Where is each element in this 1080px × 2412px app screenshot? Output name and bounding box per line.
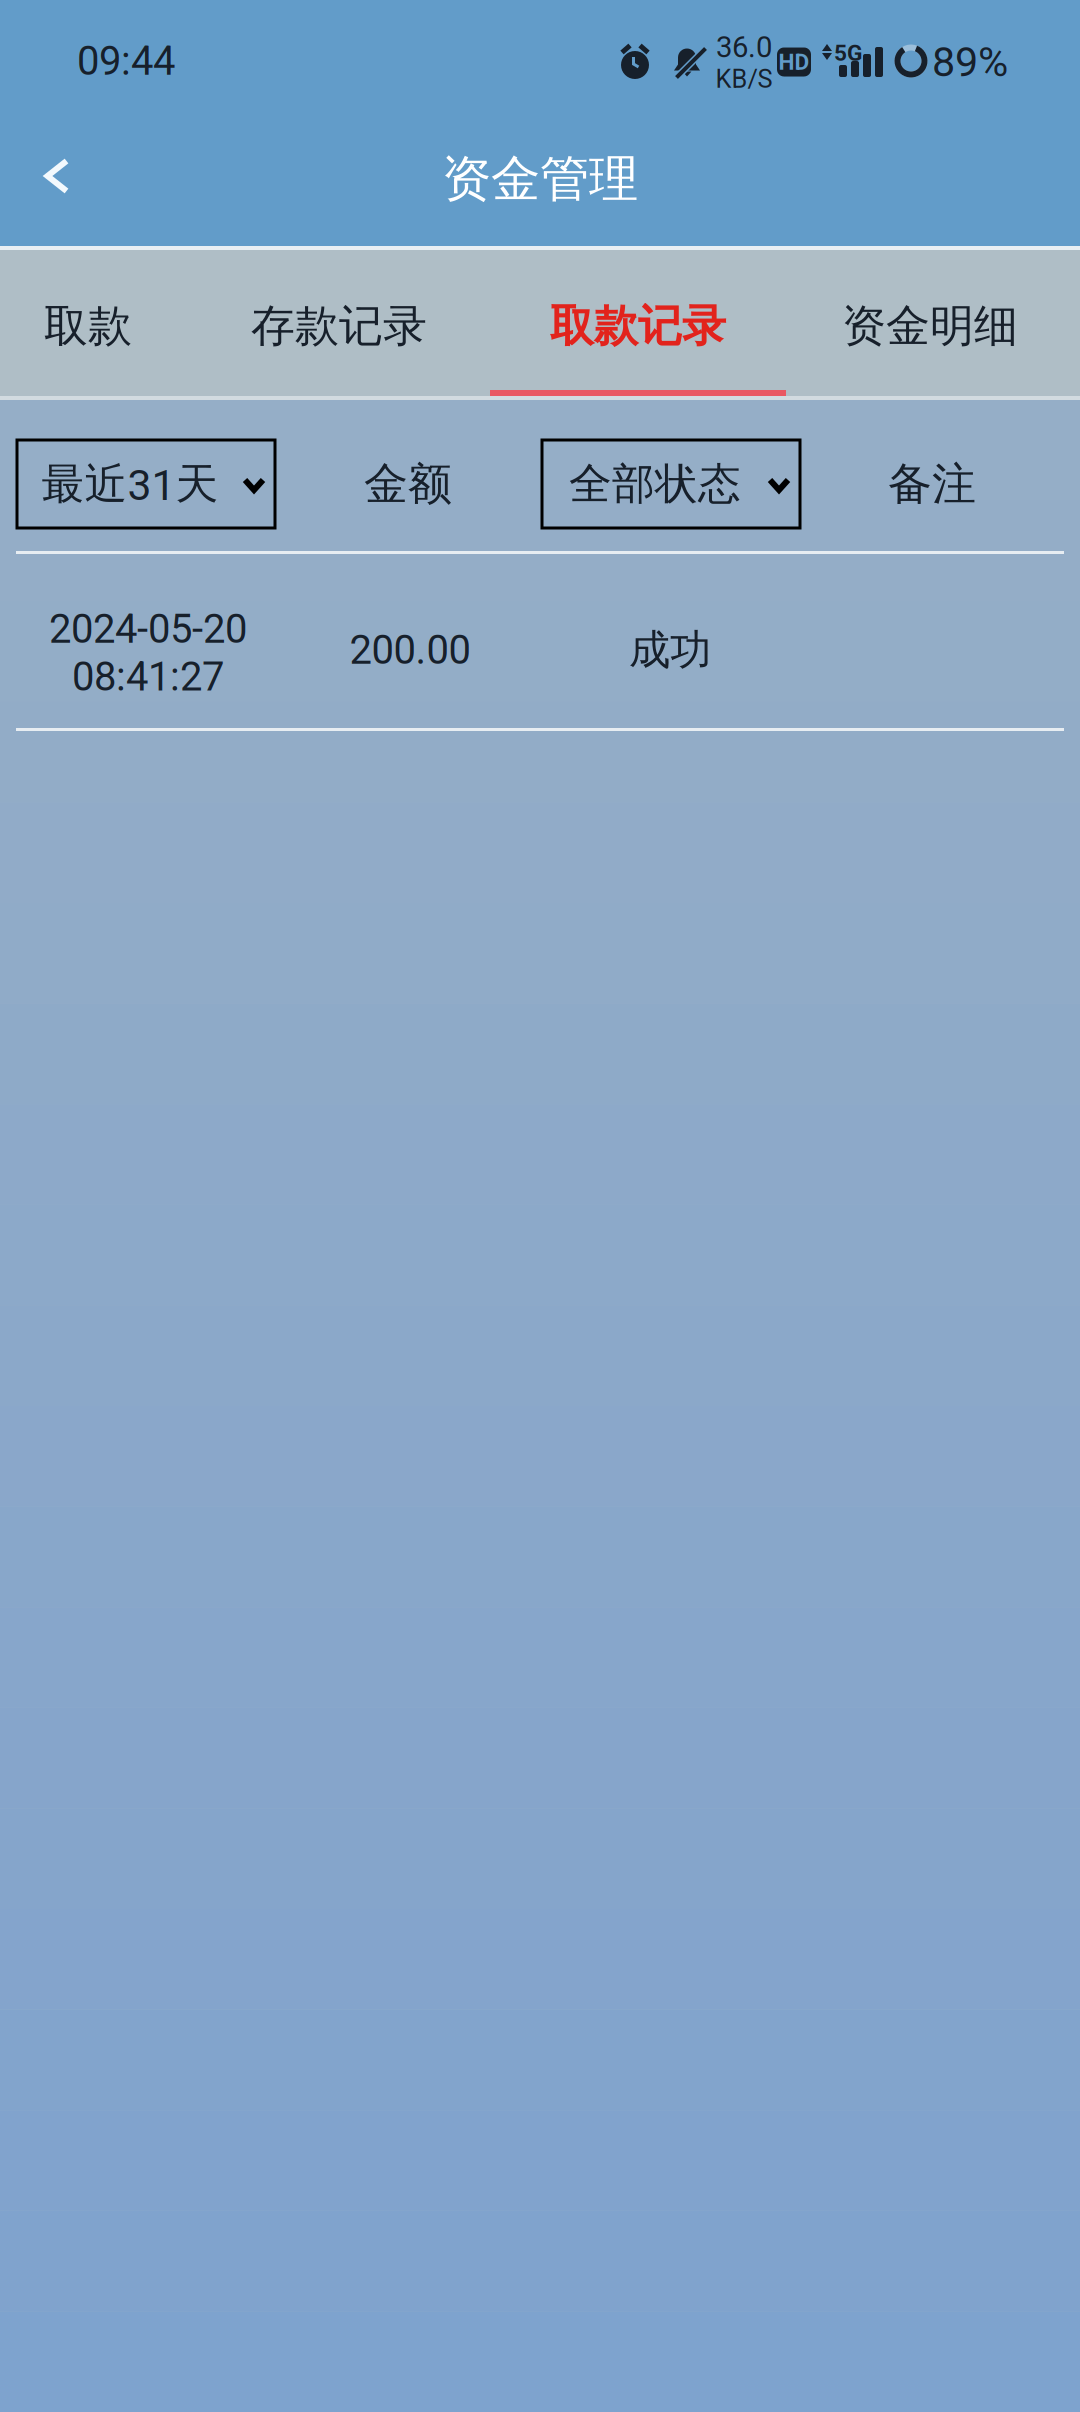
button[interactable]: 2024-05-20: [0, 554, 1080, 728]
staticText: 金额: [364, 456, 452, 512]
staticText: 2024-05-20: [49, 606, 247, 652]
staticText: 36.0: [716, 30, 772, 64]
staticText: 5G: [834, 40, 862, 66]
button[interactable]: 全部状态: [542, 440, 800, 528]
staticText: 09:44: [77, 38, 175, 84]
button[interactable]: 存款记录: [214, 250, 464, 396]
staticText: 全部状态: [569, 457, 741, 511]
staticText: 最近31天: [41, 457, 218, 511]
staticText: 存款记录: [251, 298, 427, 354]
button[interactable]: Back: [1, 120, 113, 232]
button[interactable]: 资金明细: [805, 250, 1055, 396]
staticText: 资金明细: [842, 298, 1018, 354]
staticText: 89%: [932, 38, 1008, 86]
staticText: 200.00: [349, 627, 470, 673]
button[interactable]: 取款记录: [490, 250, 786, 396]
staticText: 取款记录: [550, 298, 726, 354]
staticText: HD: [778, 49, 809, 75]
staticText: 成功: [629, 624, 711, 676]
staticText: KB/S: [715, 64, 772, 94]
staticText: 备注: [888, 456, 976, 512]
staticText: 取款: [44, 298, 132, 354]
button[interactable]: 金额: [308, 440, 508, 528]
staticText: 08:41:27: [72, 653, 224, 700]
button[interactable]: 最近31天: [17, 440, 275, 528]
staticText: 资金管理: [442, 148, 638, 210]
button[interactable]: 取款: [0, 250, 178, 396]
button[interactable]: 备注: [832, 440, 1032, 528]
